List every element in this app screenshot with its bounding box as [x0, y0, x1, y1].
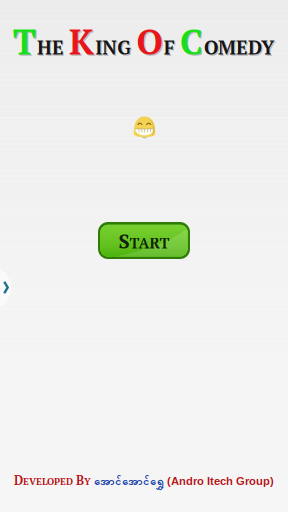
staticText: OMEDY	[204, 34, 274, 60]
staticText: HE	[37, 34, 64, 60]
staticText: (Andro Itech Group)	[167, 475, 274, 487]
button[interactable]: Open side menu	[0, 265, 11, 311]
staticText: T	[13, 18, 36, 64]
staticText: S	[118, 228, 129, 254]
staticText: K	[70, 19, 95, 66]
staticText: B	[76, 472, 84, 489]
staticText: HE	[38, 36, 65, 61]
staticText: T	[14, 19, 37, 66]
staticText: OMEDY	[205, 36, 275, 61]
staticText: EVELOPED	[23, 475, 73, 488]
staticText: O	[136, 18, 162, 64]
staticText: ING	[95, 34, 131, 60]
staticText: F	[164, 34, 175, 60]
staticText: O	[138, 19, 164, 66]
staticText: K	[69, 18, 94, 64]
staticText: C	[181, 19, 204, 66]
staticText: TART	[129, 233, 169, 253]
staticText: အောင်အောင်ရွှေ	[94, 474, 164, 491]
staticText: F	[165, 36, 176, 61]
staticText: D	[14, 472, 23, 489]
button[interactable]: S	[98, 222, 190, 259]
staticText: ING	[96, 36, 132, 61]
staticText: C	[180, 18, 203, 64]
staticText: Y	[84, 475, 91, 488]
